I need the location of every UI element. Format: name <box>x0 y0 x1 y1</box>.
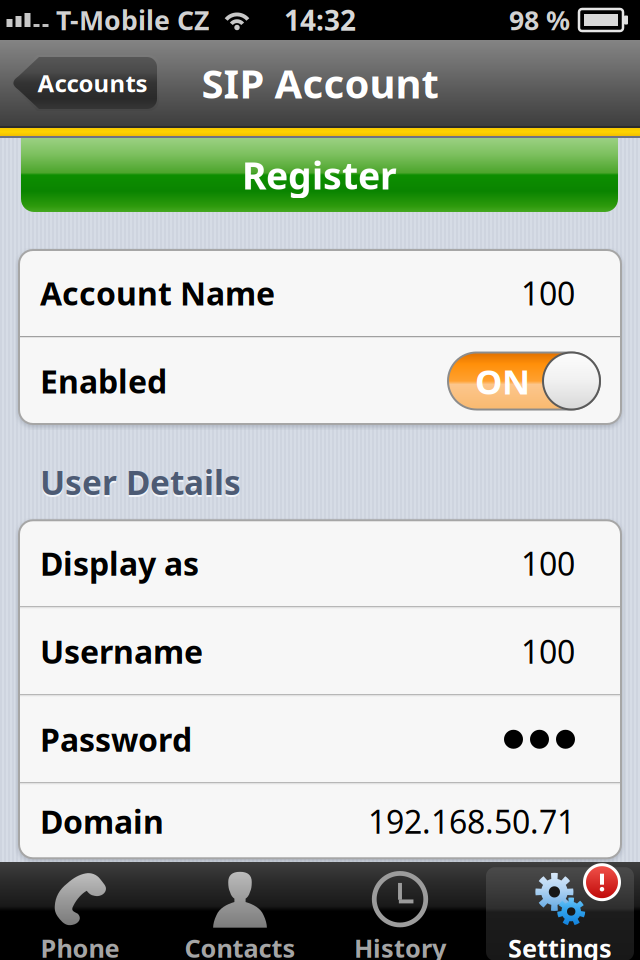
button[interactable]: Phone <box>0 862 160 960</box>
staticText: Settings <box>508 931 612 960</box>
staticText: SIP Account <box>201 56 438 109</box>
staticText: Username <box>40 630 203 672</box>
staticText: Display as <box>40 542 199 584</box>
staticText: Domain <box>40 800 164 842</box>
staticText: Phone <box>40 931 119 960</box>
staticText: 100 <box>521 272 575 314</box>
staticText: User Details <box>40 460 241 504</box>
button[interactable]: Accounts <box>10 55 159 111</box>
staticText: Account Name <box>40 272 275 314</box>
staticText: ON <box>475 358 530 404</box>
button[interactable]: Enabled toggle <box>448 352 600 409</box>
staticText: Enabled <box>40 360 167 402</box>
staticText: 14:32 <box>284 1 356 39</box>
staticText: 192.168.50.71 <box>368 800 575 842</box>
button[interactable]: Domain <box>19 778 621 864</box>
staticText: 98 % <box>509 2 570 38</box>
staticText: Accounts <box>37 67 147 99</box>
button[interactable]: Settings <box>480 862 640 960</box>
staticText: History <box>354 931 446 960</box>
button[interactable]: Password <box>19 696 621 782</box>
button[interactable]: History <box>320 862 480 960</box>
staticText: Contacts <box>184 931 295 960</box>
staticText: User Details <box>40 462 241 506</box>
staticText: 100 <box>521 630 575 672</box>
staticText: Register <box>242 150 397 200</box>
button[interactable]: Register <box>0 138 640 212</box>
button[interactable]: Username <box>19 608 621 694</box>
button[interactable]: Account Name <box>19 250 621 336</box>
staticText: T-Mobile CZ <box>56 2 209 38</box>
staticText: Password <box>40 718 192 760</box>
button[interactable]: Display as <box>19 520 621 606</box>
button[interactable]: Contacts <box>160 862 320 960</box>
staticText: 100 <box>521 542 575 584</box>
